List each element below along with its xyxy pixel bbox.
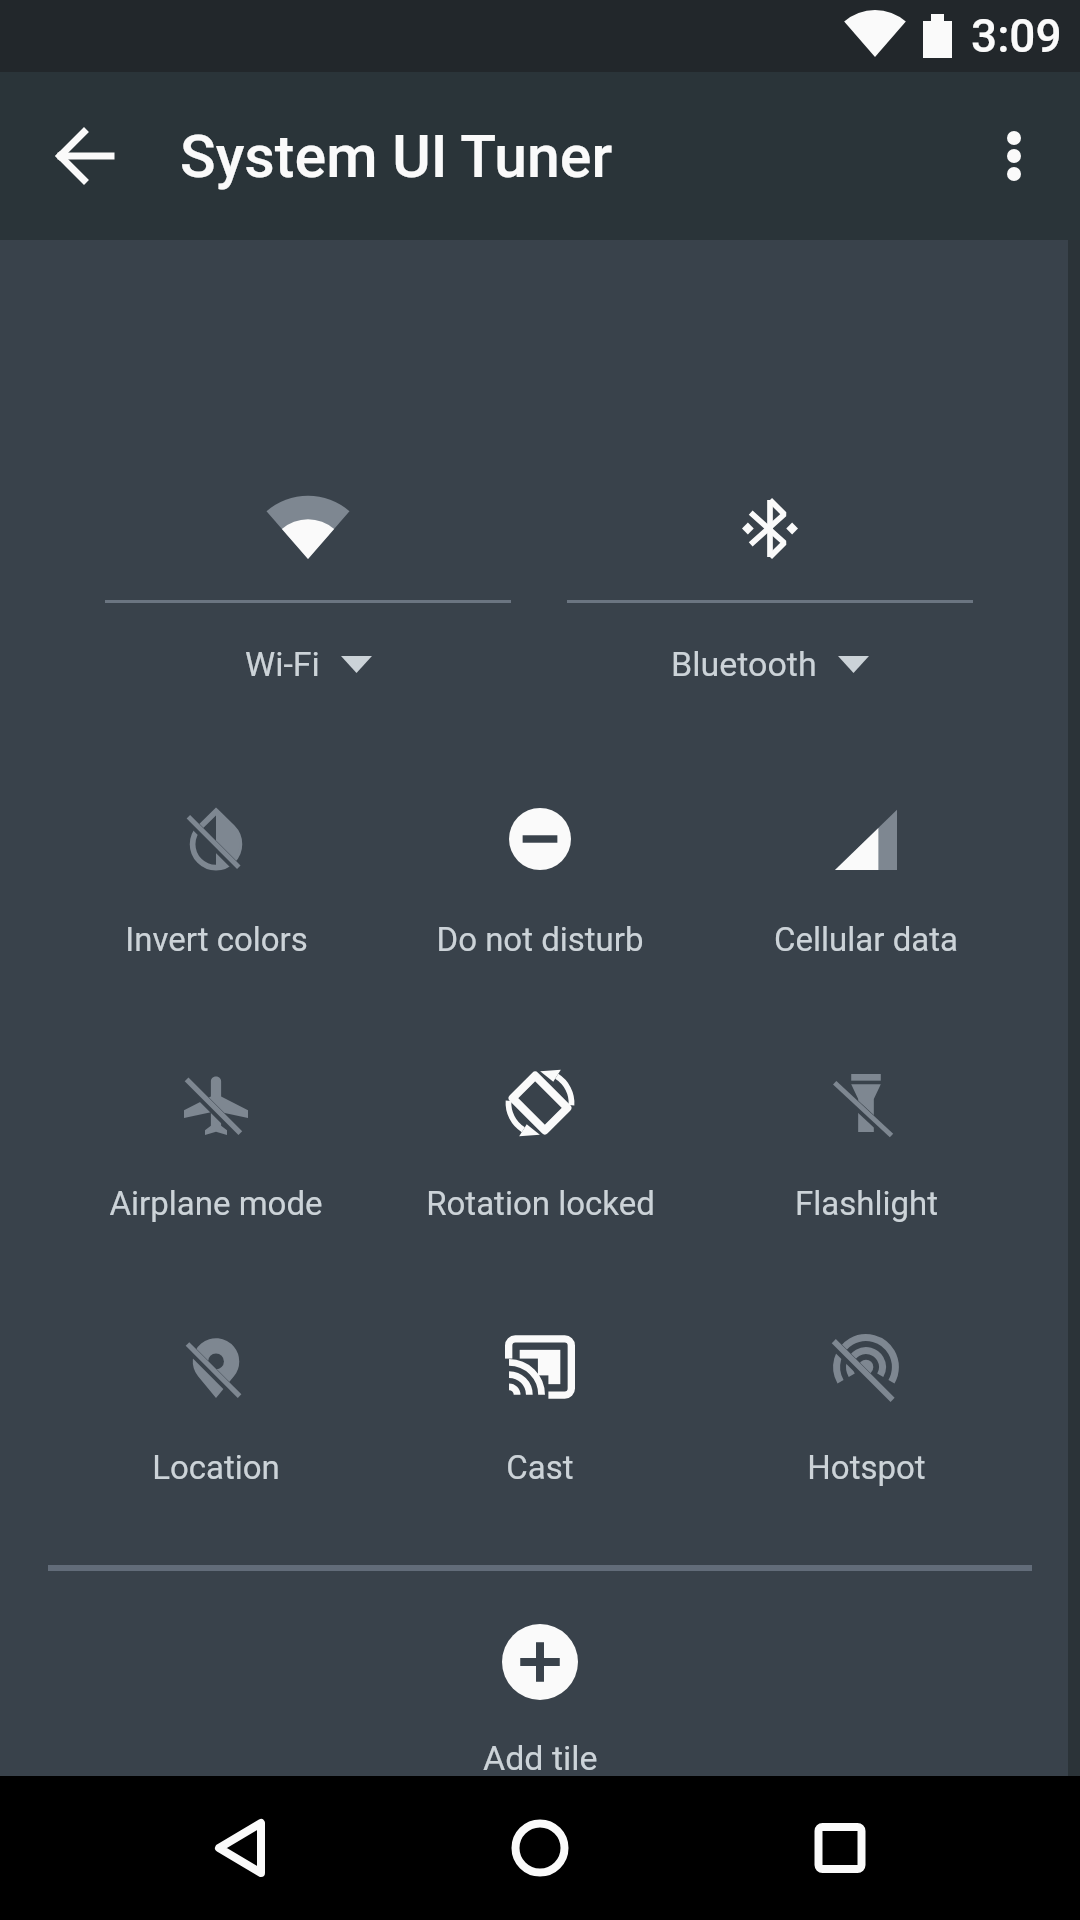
staticText: Flashlight xyxy=(795,1184,938,1223)
button[interactable]: More options xyxy=(966,108,1062,204)
staticText: 3:09 xyxy=(971,9,1062,63)
button[interactable]: Location xyxy=(54,1297,378,1507)
button[interactable]: Invert colors xyxy=(54,769,378,979)
staticText: Rotation locked xyxy=(426,1184,655,1223)
button[interactable]: Do not disturb xyxy=(378,769,702,979)
button[interactable]: Hotspot xyxy=(704,1297,1028,1507)
button[interactable]: Airplane mode xyxy=(54,1033,378,1243)
staticText: Location xyxy=(152,1448,280,1487)
button[interactable]: Navigate up xyxy=(36,108,132,204)
button[interactable]: Cast xyxy=(378,1297,702,1507)
staticText: System UI Tuner xyxy=(180,122,613,191)
staticText: Add tile xyxy=(483,1738,598,1778)
button[interactable]: Back xyxy=(168,1776,312,1920)
button[interactable]: Bluetooth xyxy=(539,470,1001,700)
staticText: Wi-Fi xyxy=(245,644,320,684)
button[interactable]: Recent apps xyxy=(768,1776,912,1920)
staticText: Do not disturb xyxy=(436,920,644,959)
staticText: Hotspot xyxy=(807,1448,926,1487)
staticText: Cellular data xyxy=(774,920,958,959)
button[interactable]: Cellular data xyxy=(704,769,1028,979)
button[interactable]: Add tile xyxy=(380,1624,700,1778)
button[interactable]: Wi-Fi xyxy=(77,470,539,700)
button[interactable]: Home xyxy=(468,1776,612,1920)
button[interactable]: Flashlight xyxy=(704,1033,1028,1243)
staticText: Bluetooth xyxy=(671,644,817,684)
staticText: Invert colors xyxy=(125,920,308,959)
button[interactable]: Rotation locked xyxy=(378,1033,702,1243)
staticText: Cast xyxy=(506,1448,574,1487)
staticText: Airplane mode xyxy=(109,1184,323,1223)
